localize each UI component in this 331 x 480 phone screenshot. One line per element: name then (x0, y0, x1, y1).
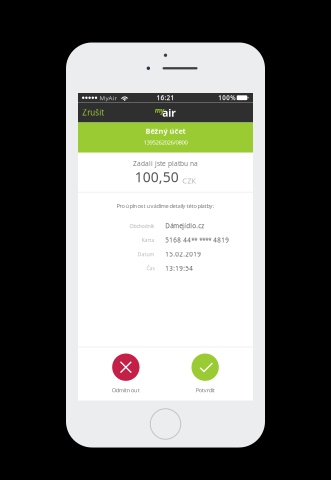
staticText: Čas (146, 265, 154, 272)
staticText: 100% (218, 94, 235, 102)
staticText: 15.02.2019 (165, 250, 201, 258)
staticText: Zadali jste platbu na (133, 159, 198, 168)
staticText: 100,50 (135, 167, 179, 186)
staticText: Zrušit (82, 107, 104, 118)
staticText: 13:19:54 (165, 264, 193, 272)
staticText: CZK (182, 176, 196, 186)
staticText: Dámejídlo.cz (165, 222, 204, 230)
button[interactable]: Zrušit (78, 102, 108, 123)
staticText: MyAir (99, 94, 117, 102)
staticText: my (155, 105, 165, 115)
button[interactable]: Odmítnout (93, 353, 159, 399)
staticText: Pro úplnost uvádíme detaily této platby: (116, 202, 214, 210)
staticText: Potvrdit (196, 386, 215, 394)
staticText: Běžný účet (145, 126, 185, 136)
staticText: Karta (141, 236, 154, 244)
staticText: 16:21 (156, 93, 174, 102)
staticText: Odmítnout (112, 386, 140, 394)
button[interactable]: Potvrdit (172, 353, 238, 399)
staticText: air (162, 106, 176, 120)
staticText: 1395262026/0800 (143, 138, 187, 146)
staticText: 5168 44** **** 4819 (165, 236, 229, 244)
staticText: Datum (137, 251, 154, 258)
staticText: Obchodník (129, 222, 154, 229)
